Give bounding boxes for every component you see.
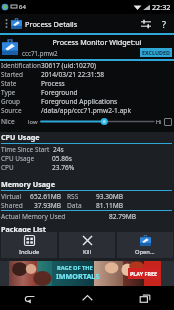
staticText: Include [19,248,40,256]
staticText: IMMORTALS [56,271,100,281]
staticText: Data [67,201,87,210]
button[interactable]: Nice level [41,116,154,127]
staticText: Process Details [25,19,78,29]
staticText: low [28,118,41,126]
staticText: RAGE OF THE [57,264,93,272]
button[interactable]: Hi priority [164,118,172,126]
staticText: CPU Usage [1,132,40,142]
staticText: 82.79MB [102,212,136,221]
staticText: Type [1,88,16,97]
staticText: /data/app/ccc71.pmw2-1.apk [41,106,131,115]
staticText: Foreground Applications [41,97,118,106]
staticText: Shared [1,201,25,210]
staticText: Source [1,106,22,115]
button[interactable]: Filter settings [137,15,155,33]
staticText: 24s [53,145,64,154]
staticText: EXCLUDED [142,49,170,56]
staticText: Kill [83,248,92,256]
staticText: Virtual [1,192,25,201]
staticText: 81.11MB [87,201,123,210]
button[interactable]: Back [0,286,58,310]
staticText: 23.76% [52,163,75,172]
staticText: Started [1,70,23,79]
staticText: Open... [135,248,155,256]
staticText: 652.61MB [25,192,61,201]
staticText: Identification [1,61,41,70]
staticText: PLAY FREE [130,270,158,277]
staticText: RSS [67,192,87,201]
staticText: 22:32 [152,2,171,12]
staticText: State [1,79,17,88]
staticText: 64 [19,3,26,11]
staticText: Hi [156,118,162,125]
staticText: 37.93MB [25,201,61,210]
staticText: CPU Consumption [1,163,52,172]
staticText: Process Monitor Widget:ui [22,37,172,47]
staticText: CPU Usage [1,154,35,163]
button[interactable]: Include [1,232,57,258]
staticText: 30617 (uid:10270) [41,61,96,70]
button[interactable]: Help [155,15,173,33]
staticText: Group [1,97,20,106]
staticText: ? [162,18,166,30]
staticText: 93.30MB [87,192,123,201]
staticText: Package List [1,224,46,234]
button[interactable]: Navigate up [4,14,9,33]
staticText: Process [41,79,65,88]
button[interactable]: Recent apps [116,286,174,310]
button[interactable]: Open... [117,232,173,258]
staticText: Nice [1,117,28,126]
button[interactable]: PLAY FREE [130,270,158,277]
staticText: 2014/03/21 22:31:58 [41,70,104,79]
button[interactable]: Kill [59,232,115,258]
staticText: 05.86s [52,154,73,163]
staticText: Actual Memory Used [1,212,66,221]
staticText: Time Since Start [1,145,50,154]
staticText: Foreground [41,88,78,97]
staticText: ccc71.pmw2 [22,49,58,57]
button[interactable]: Home [58,286,116,310]
staticText: Memory Usage [1,179,55,189]
